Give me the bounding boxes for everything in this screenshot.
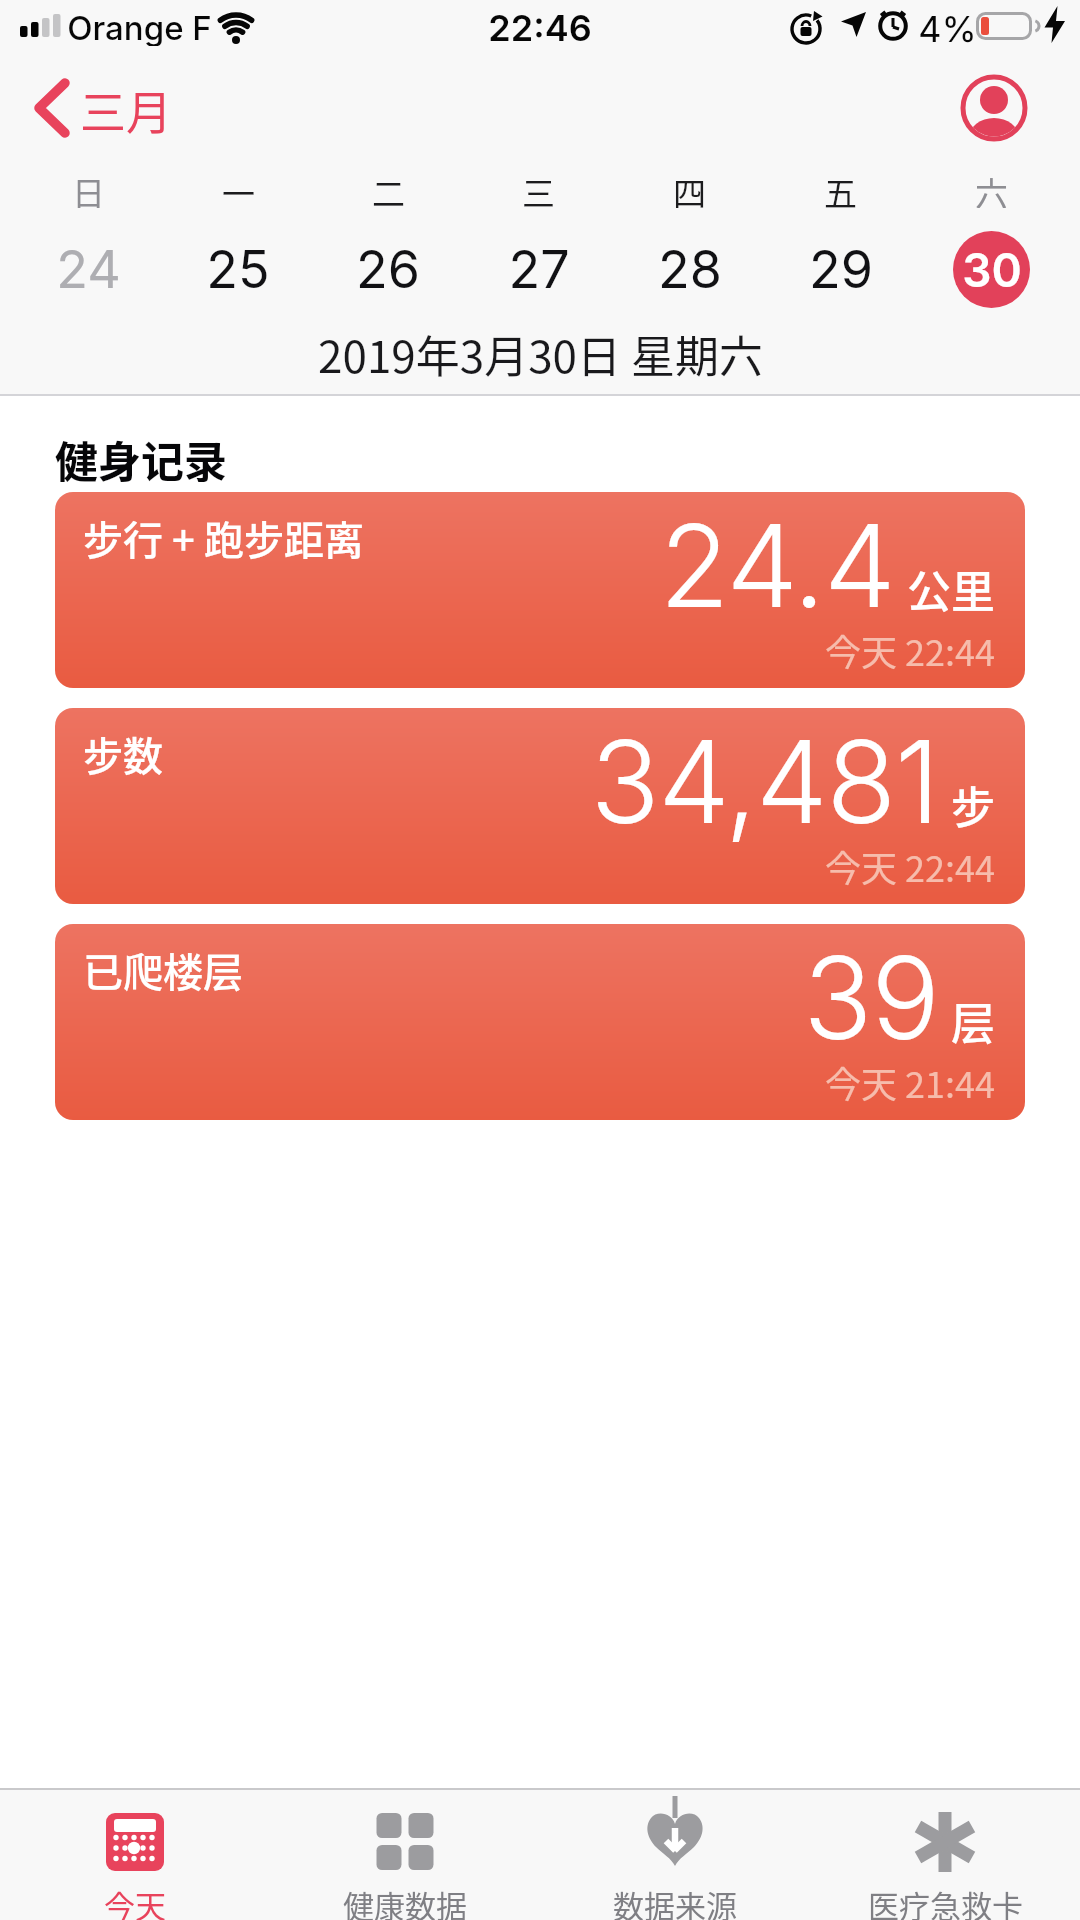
staticText: Orange F xyxy=(67,8,212,46)
staticText: 25 xyxy=(206,238,270,301)
staticText: 五 xyxy=(824,168,857,208)
button[interactable]: 步行 + 跑步距离 xyxy=(55,492,1025,688)
staticText: 今天 22:44 xyxy=(825,840,995,892)
staticText: 今天 xyxy=(104,1882,166,1920)
staticText: 三 xyxy=(522,168,555,208)
staticText: 27 xyxy=(508,238,570,301)
button[interactable]: 30 xyxy=(953,231,1030,308)
staticText: 步行 + 跑步距离 xyxy=(83,509,364,567)
button[interactable]: 步数 xyxy=(55,708,1025,904)
staticText: 39 xyxy=(803,929,939,1067)
button[interactable] xyxy=(960,74,1028,142)
staticText: 今天 22:44 xyxy=(825,624,995,676)
staticText: 已爬楼层 xyxy=(83,941,243,999)
staticText: 4% xyxy=(918,7,977,47)
staticText: 医疗急救卡 xyxy=(868,1882,1023,1920)
staticText: 今天 21:44 xyxy=(825,1056,995,1108)
button[interactable]: 健康数据 xyxy=(270,1790,540,1920)
staticText: 公里 xyxy=(907,557,995,621)
staticText: 二 xyxy=(372,168,405,208)
staticText: 2019年3月30日 星期六 xyxy=(318,322,763,378)
staticText: 健身记录 xyxy=(55,428,227,482)
staticText: 步 xyxy=(951,773,995,837)
button[interactable]: 三月 xyxy=(24,76,184,142)
button[interactable]: 医疗急救卡 xyxy=(810,1790,1080,1920)
staticText: 三月 xyxy=(80,76,172,142)
button[interactable]: 已爬楼层 xyxy=(55,924,1025,1120)
staticText: 一 xyxy=(222,168,255,208)
staticText: 24.4 xyxy=(659,497,895,635)
staticText: 29 xyxy=(809,238,873,301)
staticText: 30 xyxy=(962,242,1022,298)
button[interactable]: 今天 xyxy=(0,1790,270,1920)
staticText: 22:46 xyxy=(488,6,592,48)
staticText: 日 xyxy=(72,168,105,208)
staticText: 健康数据 xyxy=(343,1882,467,1920)
staticText: 24 xyxy=(56,238,121,301)
staticText: 34,481 xyxy=(590,713,939,851)
staticText: 28 xyxy=(658,238,722,301)
button[interactable]: 数据来源 xyxy=(540,1790,810,1920)
staticText: 26 xyxy=(356,238,420,301)
staticText: 六 xyxy=(975,168,1008,208)
staticText: 步数 xyxy=(83,725,163,783)
staticText: 四 xyxy=(673,168,706,208)
staticText: 层 xyxy=(951,989,995,1053)
staticText: 数据来源 xyxy=(613,1882,737,1920)
